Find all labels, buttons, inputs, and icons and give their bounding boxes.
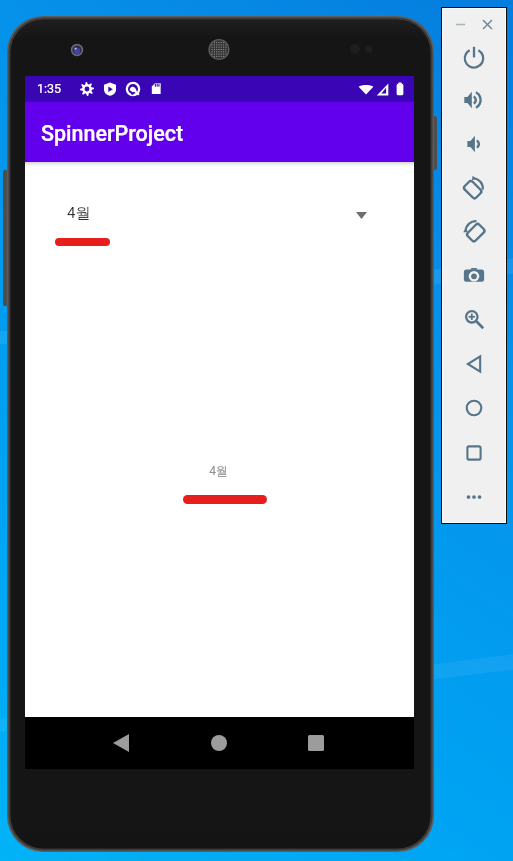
button[interactable]: Recent apps xyxy=(290,717,342,769)
button[interactable]: Close xyxy=(475,12,499,36)
staticText: 4월 xyxy=(209,463,228,478)
button[interactable]: Overview xyxy=(443,436,505,470)
button[interactable]: Rotate left xyxy=(443,170,505,204)
button[interactable]: Power xyxy=(443,40,505,74)
button[interactable]: Back xyxy=(443,347,505,381)
button[interactable]: Back xyxy=(95,717,147,769)
button[interactable]: More xyxy=(443,480,505,514)
button[interactable]: Take screenshot xyxy=(443,258,505,292)
button[interactable]: 4월 xyxy=(41,184,398,246)
staticText: SpinnerProject xyxy=(41,121,184,146)
button[interactable]: Minimize xyxy=(448,12,472,36)
staticText: 1:35 xyxy=(37,81,62,96)
button[interactable]: Home xyxy=(443,391,505,425)
staticText: 4월 xyxy=(67,204,91,223)
button[interactable]: Home xyxy=(193,717,245,769)
button[interactable]: Volume down xyxy=(443,127,505,161)
button[interactable]: Volume up xyxy=(443,83,505,117)
button[interactable]: Zoom xyxy=(443,302,505,336)
button[interactable]: Rotate right xyxy=(443,213,505,247)
